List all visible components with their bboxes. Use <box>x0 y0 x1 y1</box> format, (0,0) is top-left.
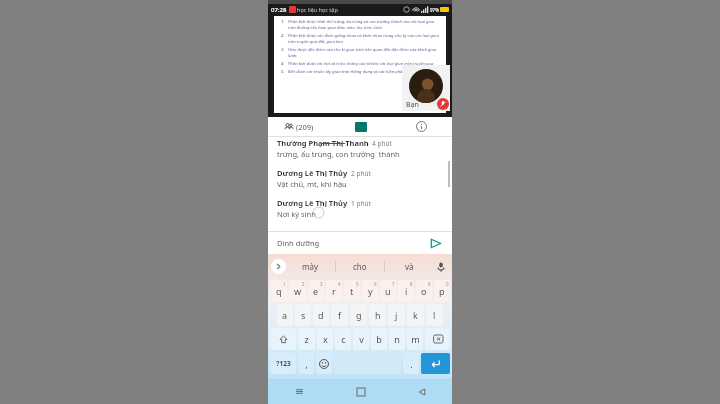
button[interactable]: t <box>344 280 360 302</box>
button[interactable]: Send <box>427 235 443 251</box>
button[interactable]: j <box>388 304 405 326</box>
button[interactable]: b <box>371 328 387 350</box>
button[interactable]: g <box>350 304 367 326</box>
button[interactable]: q <box>270 280 287 302</box>
staticText: p <box>439 285 445 297</box>
staticText: 4 phút <box>372 139 392 148</box>
staticText: . <box>410 358 413 370</box>
button[interactable]: Participant Bạn <box>402 65 450 111</box>
button[interactable]: n <box>389 328 405 350</box>
staticText: ?123 <box>276 359 291 368</box>
staticText: 97% <box>430 7 439 13</box>
button[interactable]: x <box>317 328 333 350</box>
button[interactable]: i <box>398 280 414 302</box>
staticText: (209) <box>296 122 314 132</box>
button[interactable]: a <box>277 304 293 326</box>
staticText: u <box>385 285 391 297</box>
staticText: d <box>318 309 324 321</box>
staticText: 7 <box>392 281 395 287</box>
button[interactable]: o <box>416 280 432 302</box>
button[interactable]: cho <box>336 254 384 279</box>
staticText: 3. <box>281 47 288 53</box>
staticText: 2. <box>281 33 288 39</box>
staticText: trứng, ấu trùng, con trưởng thành <box>277 149 400 159</box>
button[interactable]: k <box>407 304 424 326</box>
staticText: l <box>433 309 436 321</box>
staticText: k <box>413 309 418 321</box>
button[interactable]: w <box>289 280 306 302</box>
staticText: x <box>323 333 328 345</box>
button[interactable]: y <box>362 280 378 302</box>
staticText: cho <box>353 261 367 272</box>
button[interactable]: e <box>308 280 324 302</box>
staticText: 1 phút <box>351 199 371 208</box>
staticText: 2 phút <box>351 169 371 178</box>
button[interactable]: Home <box>330 379 391 404</box>
button[interactable]: p <box>434 280 450 302</box>
button[interactable]: h <box>369 304 386 326</box>
staticText: Phân biệt được các điểm giống nhau và kh… <box>288 33 442 45</box>
staticText: c <box>341 333 346 345</box>
button[interactable]: r <box>326 280 342 302</box>
button[interactable]: , <box>298 353 314 374</box>
button[interactable] <box>316 353 332 374</box>
button[interactable]: . <box>403 353 419 374</box>
staticText: w <box>294 285 302 297</box>
staticText: Biết được các thuốc tẩy giun tròn thông … <box>288 69 426 75</box>
staticText: h <box>375 309 381 321</box>
button[interactable]: f <box>331 304 348 326</box>
button[interactable]: Voice input <box>433 259 449 275</box>
staticText: Thường Phạm Thị Thanh <box>277 138 369 148</box>
staticText: Dương Lê Thị Thủy <box>277 198 348 208</box>
staticText: Dinh dưỡng <box>277 238 427 248</box>
button[interactable]: m <box>407 328 423 350</box>
button[interactable]: và <box>385 254 433 279</box>
button[interactable]: Recents <box>268 379 330 404</box>
staticText: 4. <box>281 61 288 67</box>
staticText: 5. <box>281 69 288 75</box>
button[interactable]: c <box>335 328 351 350</box>
button[interactable]: mày <box>286 254 335 279</box>
staticText: Phân biệt được hình thể trứng, ấu trùng … <box>288 19 442 31</box>
button[interactable] <box>270 328 296 350</box>
staticText: 8 <box>410 281 413 287</box>
staticText: 6 <box>374 281 377 287</box>
staticText: y <box>368 285 373 297</box>
button[interactable]: (209) <box>268 117 330 136</box>
staticText: j <box>395 309 398 321</box>
button[interactable]: z <box>298 328 315 350</box>
button[interactable]: d <box>313 304 329 326</box>
staticText: f <box>338 309 342 321</box>
staticText: 1. <box>281 19 288 25</box>
staticText: 4 <box>338 281 341 287</box>
staticText: v <box>359 333 364 345</box>
button[interactable]: v <box>353 328 369 350</box>
staticText: t <box>350 285 354 297</box>
button[interactable]: Back <box>391 379 452 404</box>
button[interactable]: l <box>426 304 443 326</box>
button[interactable]: ?123 <box>270 353 296 374</box>
staticText: 0 <box>446 281 449 287</box>
staticText: 2 <box>302 281 305 287</box>
button[interactable] <box>421 353 450 374</box>
button[interactable]: More <box>271 259 286 274</box>
button[interactable]: Microphone muted <box>437 98 449 110</box>
staticText: b <box>376 333 382 345</box>
button[interactable]: u <box>380 280 396 302</box>
staticText: g <box>356 309 362 321</box>
staticText: s <box>301 309 306 321</box>
staticText: 07:28 <box>271 6 287 14</box>
staticText: 9 <box>428 281 431 287</box>
button[interactable]: s <box>295 304 311 326</box>
staticText: 1 <box>283 281 286 287</box>
staticText: r <box>332 285 336 297</box>
staticText: 3 <box>320 281 323 287</box>
staticText: Phân biệt được tác hại và triệu chứng củ… <box>288 61 434 67</box>
button[interactable] <box>425 328 450 350</box>
staticText: Vật chủ, mt, khí hậu <box>277 179 347 189</box>
staticText: Dương Lê Thị Thủy <box>277 168 348 178</box>
staticText: Nơi ký sinh <box>277 209 316 219</box>
button[interactable]: Info <box>391 117 452 136</box>
button[interactable]: Chat <box>330 117 391 136</box>
